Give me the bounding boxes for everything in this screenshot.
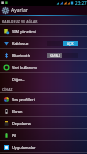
staticText: Kablosuz <box>12 41 29 46</box>
staticText: Diğer... <box>12 77 25 82</box>
staticText: CİHAZ <box>2 87 13 91</box>
button[interactable]: Pil <box>0 129 87 141</box>
staticText: AÇIK <box>67 42 74 46</box>
staticText: Depolama <box>12 121 31 126</box>
staticText: Ayarlar <box>11 7 28 14</box>
staticText: KAPALI <box>50 54 60 58</box>
button[interactable]: KAPALI <box>47 53 78 58</box>
staticText: KABLOSUZ VE AĞLAR <box>2 19 38 23</box>
button[interactable]: Kablosuz <box>0 37 87 49</box>
button[interactable]: Ses profilleri <box>0 93 87 105</box>
button[interactable]: Ekran <box>0 105 87 117</box>
staticText: Veri kullanımı <box>12 65 37 70</box>
staticText: Bluetooth <box>12 53 31 58</box>
staticText: Ekran <box>12 109 23 114</box>
button[interactable]: SIM yönetimi <box>0 25 87 37</box>
button[interactable]: Uygulamalar <box>0 141 87 153</box>
staticText: 23:27 <box>75 0 87 6</box>
button[interactable]: Veri kullanımı <box>0 61 87 73</box>
button[interactable]: Diğer... <box>0 73 87 85</box>
staticText: SIM yönetimi <box>12 29 36 34</box>
button[interactable]: Bluetooth <box>0 49 87 61</box>
staticText: Pil <box>12 133 17 138</box>
staticText: Ses profilleri <box>12 97 35 102</box>
staticText: Uygulamalar <box>12 145 36 150</box>
button[interactable]: Depolama <box>0 117 87 129</box>
button[interactable]: Ayarlar <box>2 7 9 14</box>
button[interactable]: AÇIK <box>47 41 78 46</box>
